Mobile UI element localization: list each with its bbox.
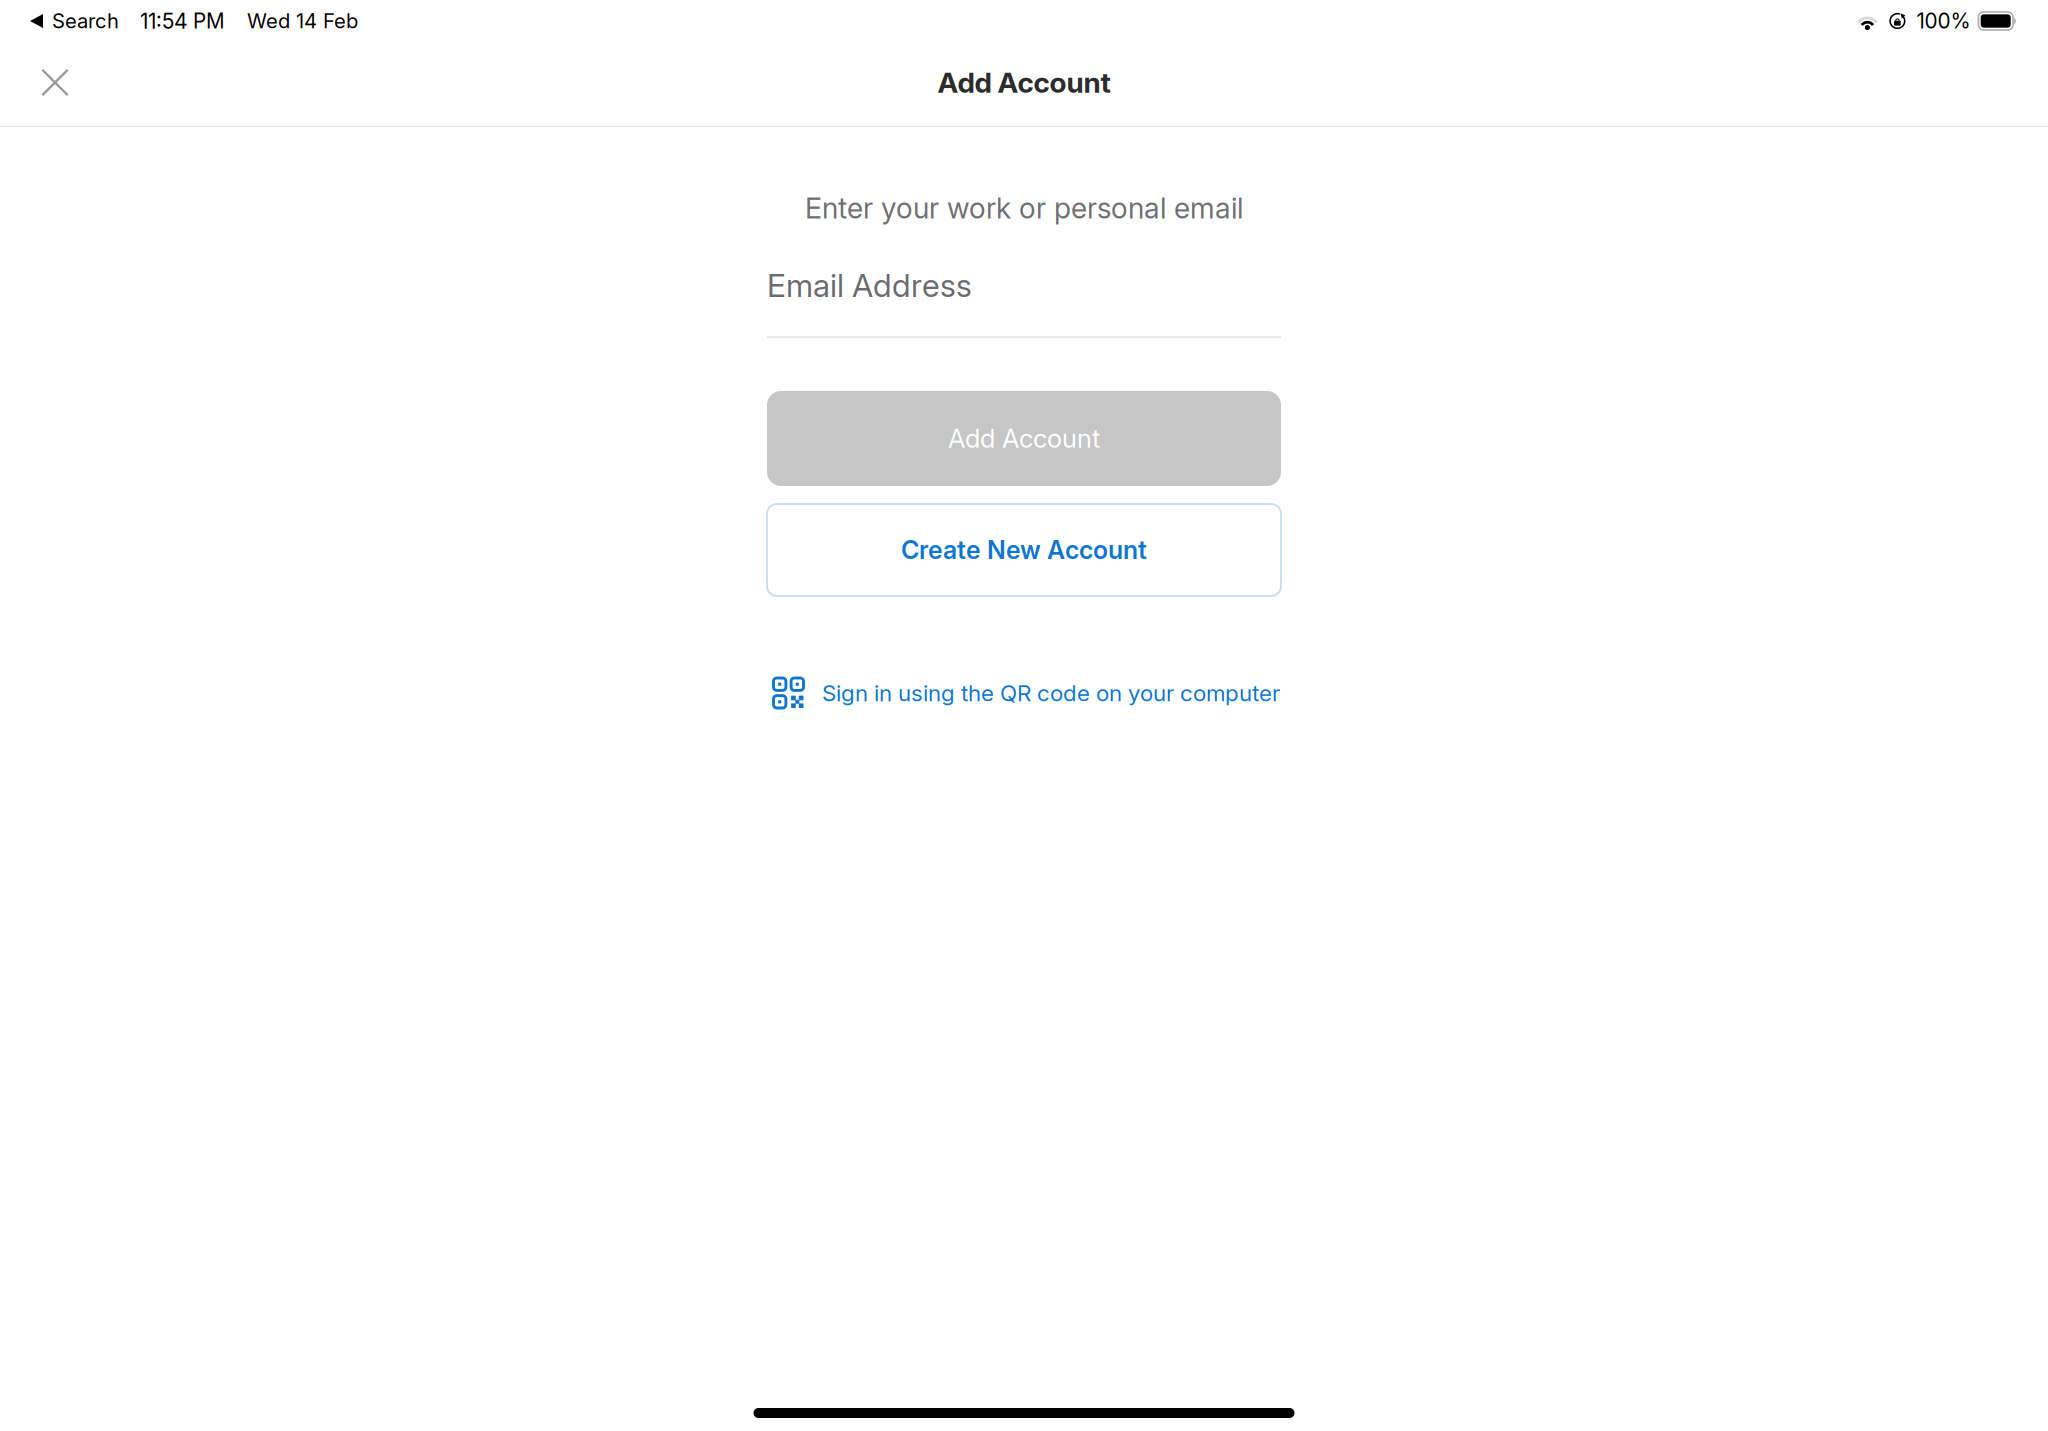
staticText: PM [193,8,225,33]
staticText: Email Address [767,266,972,305]
staticText: Search [52,9,119,33]
staticText: 100% [1916,8,1970,34]
staticText: Create New Account [901,535,1147,565]
button[interactable]: Create New Account [767,504,1281,596]
staticText: Sign in using the QR code on your comput… [822,679,1280,706]
staticText: Add Account [937,65,1110,100]
button[interactable]: Sign in using the QR code on your comput… [767,671,1281,715]
staticText: Enter your work or personal email [805,191,1243,225]
button[interactable]: Add Account [767,391,1281,486]
staticText: Wed 14 Feb [247,9,358,33]
button[interactable]: Close [27,55,83,113]
staticText: 11:54 [140,8,188,34]
staticText: Add Account [948,423,1100,454]
